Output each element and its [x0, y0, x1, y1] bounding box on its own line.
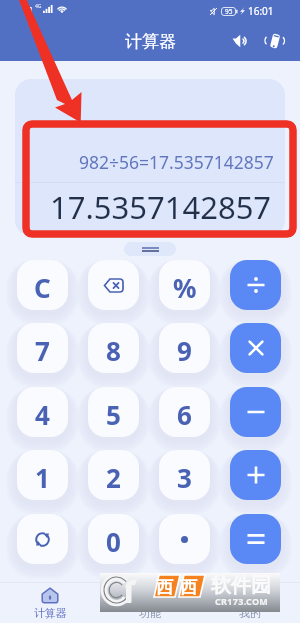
staticText: 9 [177, 333, 192, 368]
button[interactable]: 3 [159, 450, 210, 500]
button[interactable]: Shake [261, 28, 287, 54]
staticText: 计算器 [34, 606, 67, 620]
button[interactable]: 8 [88, 323, 139, 373]
button[interactable]: Decimal point [159, 514, 210, 564]
button[interactable]: 7 [17, 323, 68, 373]
staticText: 3 [177, 460, 192, 495]
staticText: 4 [35, 397, 50, 432]
button[interactable]: C [17, 260, 68, 310]
button[interactable]: 5 [88, 387, 139, 437]
staticText: C [34, 270, 51, 305]
staticText: 西 [180, 577, 197, 598]
button[interactable]: 4 [17, 387, 68, 437]
staticText: 16:01 [248, 4, 274, 18]
button[interactable]: 我的 [200, 583, 300, 623]
button[interactable]: 2 [88, 450, 139, 500]
staticText: CR173.COM [215, 595, 269, 607]
staticText: 7 [35, 333, 50, 368]
button[interactable]: 1 [17, 450, 68, 500]
button[interactable]: 0 [88, 514, 139, 564]
staticText: 西 [156, 577, 173, 598]
button[interactable]: ÷ [230, 260, 281, 310]
button[interactable]: Convert [17, 514, 68, 564]
button[interactable]: Expand history [124, 242, 176, 256]
button[interactable]: 功能 [100, 583, 200, 623]
staticText: 95 [225, 7, 233, 16]
staticText: 软件园 [211, 573, 271, 598]
staticText: 2 [106, 460, 121, 495]
button[interactable]: % [159, 260, 210, 310]
button[interactable]: 计算器 [0, 583, 100, 623]
button[interactable]: − [230, 387, 281, 437]
staticText: 8 [106, 333, 121, 368]
staticText: 17.5357142857 [50, 186, 272, 228]
staticText: 0 [106, 524, 121, 559]
staticText: 我的 [239, 606, 261, 620]
staticText: 计算器 [125, 31, 176, 52]
button[interactable]: Sound [228, 28, 254, 54]
staticText: HD [25, 7, 32, 13]
staticText: 982÷56=17.5357142857 [79, 150, 274, 174]
button[interactable]: = [230, 514, 281, 564]
button[interactable]: 6 [159, 387, 210, 437]
button[interactable]: 9 [159, 323, 210, 373]
staticText: 功能 [139, 606, 161, 620]
button[interactable]: × [230, 323, 281, 373]
staticText: 6 [177, 397, 192, 432]
button[interactable]: + [230, 450, 281, 500]
staticText: 5 [106, 397, 121, 432]
button[interactable]: Backspace [88, 260, 139, 310]
staticText: 1 [35, 460, 50, 495]
staticText: 4G [35, 3, 42, 10]
staticText: % [173, 270, 197, 305]
